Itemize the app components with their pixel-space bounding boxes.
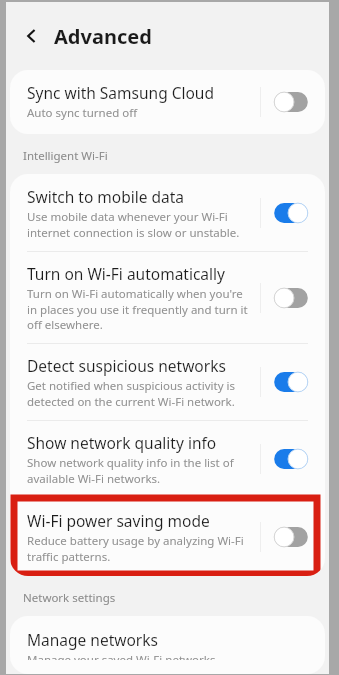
button[interactable]: Switch to mobile data xyxy=(10,174,325,251)
staticText: Reduce battery usage by analyzing Wi-Fi … xyxy=(27,533,252,564)
staticText: Show network quality info in the list of… xyxy=(27,455,252,486)
button[interactable]: Sync with Samsung Cloud xyxy=(10,70,325,134)
staticText: Wi-Fi power saving mode xyxy=(27,510,210,531)
button[interactable]: Back xyxy=(16,20,48,52)
staticText: Sync with Samsung Cloud xyxy=(27,82,214,103)
staticText: Get notified when suspicious activity is… xyxy=(27,378,252,409)
staticText: Manage your saved Wi-Fi networks. xyxy=(27,652,219,660)
button[interactable]: Manage networks xyxy=(10,616,325,674)
button[interactable]: Switch to mobile data xyxy=(271,200,311,226)
staticText: Manage networks xyxy=(27,629,158,650)
staticText: Switch to mobile data xyxy=(27,186,185,207)
button[interactable]: Turn on Wi-Fi automatically xyxy=(10,252,325,343)
button[interactable]: Sync with Samsung Cloud xyxy=(271,89,311,115)
staticText: Turn on Wi-Fi automatically xyxy=(27,263,225,284)
button[interactable]: Turn on Wi-Fi automatically xyxy=(271,285,311,311)
staticText: Auto sync turned off xyxy=(27,105,138,121)
staticText: Network settings xyxy=(23,590,116,606)
staticText: Intelligent Wi-Fi xyxy=(23,148,108,164)
staticText: Show network quality info xyxy=(27,432,217,453)
staticText: Advanced xyxy=(54,23,152,50)
button[interactable]: Detect suspicious networks xyxy=(10,344,325,420)
staticText: Turn on Wi-Fi automatically when you're … xyxy=(27,286,252,332)
staticText: Detect suspicious networks xyxy=(27,355,226,376)
button[interactable]: Show network quality info xyxy=(10,421,325,497)
button[interactable]: Detect suspicious networks xyxy=(271,369,311,395)
button[interactable]: Wi-Fi power saving mode xyxy=(10,498,325,576)
button[interactable]: Show network quality info xyxy=(271,446,311,472)
button[interactable]: Wi-Fi power saving mode xyxy=(271,524,311,550)
staticText: Use mobile data whenever your Wi-Fi inte… xyxy=(27,209,252,240)
